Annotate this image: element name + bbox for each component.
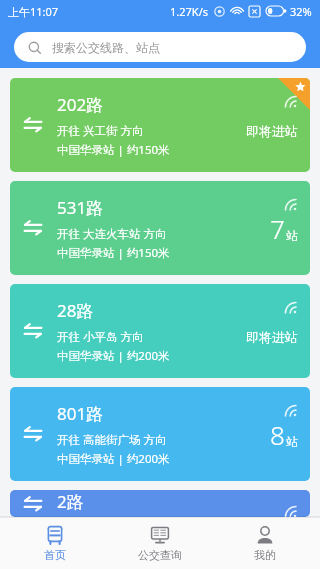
staticText: 中国华录站 | 约200米 xyxy=(57,348,170,364)
staticText: 开往 高能街广场 方向 xyxy=(57,432,167,448)
staticText: 28路 xyxy=(57,299,94,322)
staticText: 32% xyxy=(290,4,312,19)
staticText: 中国华录站 | 约150米 xyxy=(57,245,170,261)
button[interactable]: 公交查询 xyxy=(110,517,210,569)
button[interactable]: 531路 xyxy=(10,181,310,275)
staticText: 7 xyxy=(270,211,285,246)
staticText: 站 xyxy=(286,434,298,449)
staticText: 搜索公交线路、站点 xyxy=(52,40,160,55)
staticText: 开往 小平岛 方向 xyxy=(57,329,144,345)
staticText: 开往 兴工街 方向 xyxy=(57,123,144,139)
staticText: 中国华录站 | 约200米 xyxy=(57,451,170,467)
button[interactable]: 首页 xyxy=(5,517,105,569)
staticText: 首页 xyxy=(44,548,66,562)
staticText: 801路 xyxy=(57,402,104,425)
button[interactable]: 801路 xyxy=(10,387,310,481)
button[interactable]: 2路 xyxy=(10,490,310,517)
button[interactable]: 202路 xyxy=(10,78,310,172)
staticText: 即将进站 xyxy=(246,329,298,345)
staticText: 开往 大连火车站 方向 xyxy=(57,226,167,242)
staticText: 公交查询 xyxy=(138,548,182,562)
staticText: 我的 xyxy=(254,548,276,562)
staticText: 8 xyxy=(270,417,285,452)
staticText: 站 xyxy=(286,228,298,243)
staticText: 202路 xyxy=(57,93,104,116)
staticText: 中国华录站 | 约150米 xyxy=(57,142,170,158)
staticText: 即将进站 xyxy=(246,123,298,139)
staticText: 531路 xyxy=(57,196,104,219)
button[interactable]: 搜索公交线路、站点 xyxy=(14,32,306,62)
staticText: 2路 xyxy=(57,490,84,513)
staticText: 1.27K/s xyxy=(170,4,208,19)
button[interactable]: 28路 xyxy=(10,284,310,378)
button[interactable]: 我的 xyxy=(215,517,315,569)
staticText: 上午11:07 xyxy=(8,4,59,19)
